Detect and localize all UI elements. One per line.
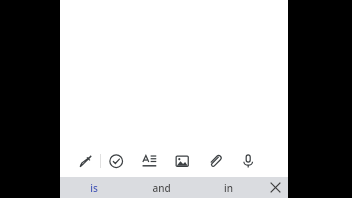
button[interactable]: in: [195, 177, 262, 198]
staticText: and: [152, 181, 171, 195]
button[interactable]: Insert image: [172, 151, 192, 171]
button[interactable]: is: [60, 177, 128, 198]
button[interactable]: Attach file: [205, 151, 225, 171]
button[interactable]: Draw: [75, 151, 95, 171]
staticText: is: [90, 181, 98, 195]
button[interactable]: Mark complete: [106, 151, 126, 171]
button[interactable]: Close suggestions: [262, 177, 288, 198]
button[interactable]: and: [128, 177, 195, 198]
button[interactable]: Voice input: [238, 151, 258, 171]
staticText: in: [224, 181, 233, 195]
button[interactable]: Formatting: [139, 151, 159, 171]
